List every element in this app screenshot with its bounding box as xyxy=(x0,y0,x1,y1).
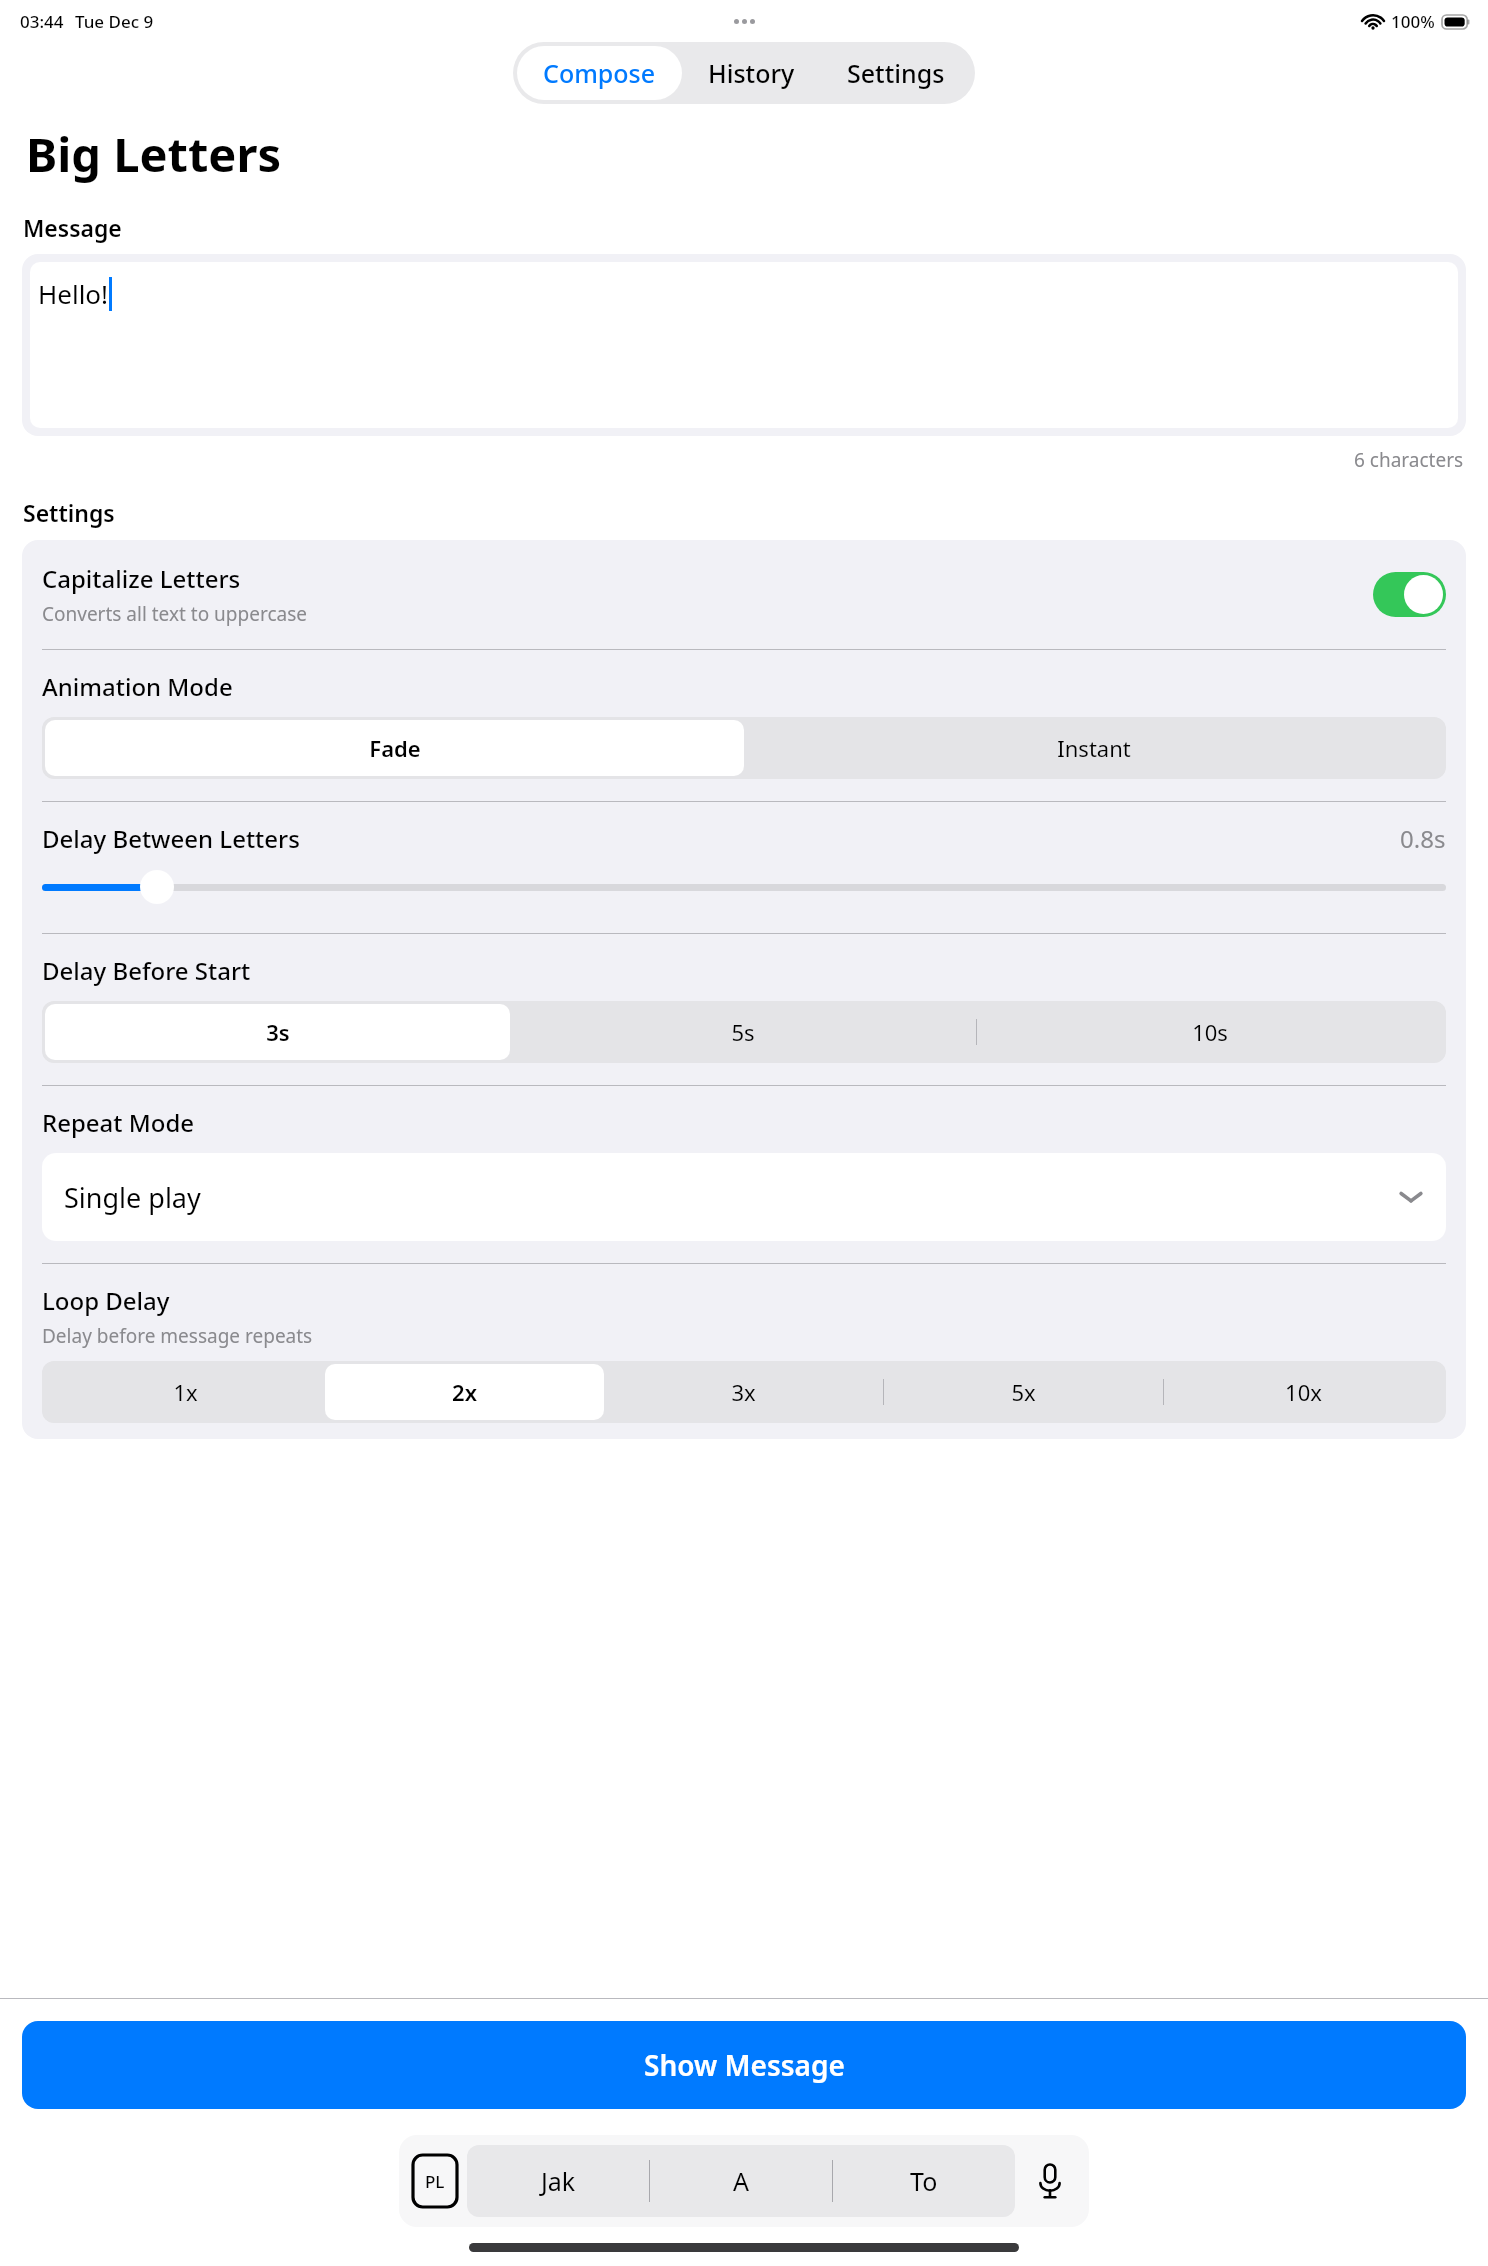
staticText: Delay Before Start xyxy=(42,954,251,987)
staticText: Repeat Mode xyxy=(42,1106,195,1139)
staticText: 100% xyxy=(1391,10,1435,33)
staticText: PL xyxy=(425,2170,445,2193)
button[interactable]: Dictation xyxy=(1025,2156,1075,2206)
button[interactable]: 10x xyxy=(1164,1364,1443,1420)
staticText: Hello! xyxy=(38,276,109,311)
staticText: Tue Dec 9 xyxy=(75,10,154,33)
staticText: Big Letters xyxy=(26,122,282,186)
staticText: Instant xyxy=(1057,733,1131,763)
staticText: A xyxy=(733,2164,749,2198)
staticText: Delay before message repeats xyxy=(42,1323,313,1349)
button[interactable]: 3x xyxy=(604,1364,883,1420)
staticText: Capitalize Letters xyxy=(42,562,241,595)
staticText: 6 characters xyxy=(1354,447,1464,473)
button[interactable]: 1x xyxy=(45,1364,325,1420)
staticText: Delay Between Letters xyxy=(42,822,300,855)
staticText: 10x xyxy=(1285,1377,1322,1407)
button[interactable]: Single play xyxy=(42,1153,1446,1241)
button[interactable]: 5x xyxy=(884,1364,1163,1420)
button[interactable]: 5s xyxy=(510,1004,976,1060)
staticText: 1x xyxy=(173,1377,198,1407)
button[interactable]: Settings xyxy=(821,46,971,100)
staticText: Settings xyxy=(847,56,945,90)
button[interactable]: Fade xyxy=(45,720,744,776)
button[interactable]: Instant xyxy=(744,720,1443,776)
staticText: 5x xyxy=(1011,1377,1036,1407)
button[interactable]: Language PL xyxy=(413,2155,457,2207)
staticText: 0.8s xyxy=(1400,822,1446,855)
staticText: Converts all text to uppercase xyxy=(42,601,307,627)
button[interactable]: A xyxy=(650,2145,832,2217)
staticText: Message xyxy=(23,212,122,243)
staticText: 10s xyxy=(1192,1017,1228,1047)
button[interactable]: Capitalize Letters xyxy=(42,540,1446,649)
button[interactable]: 10s xyxy=(977,1004,1443,1060)
button[interactable]: Compose xyxy=(517,46,682,100)
staticText: To xyxy=(910,2164,938,2198)
button[interactable]: 2x xyxy=(325,1364,604,1420)
staticText: Compose xyxy=(543,56,656,90)
button[interactable]: 3s xyxy=(45,1004,510,1060)
staticText: History xyxy=(708,56,795,90)
staticText: Jak xyxy=(541,2164,576,2198)
button[interactable]: Hello! xyxy=(30,262,1458,428)
staticText: Animation Mode xyxy=(42,670,233,703)
staticText: Fade xyxy=(369,733,421,763)
staticText: Loop Delay xyxy=(42,1284,170,1317)
button[interactable]: To xyxy=(833,2145,1015,2217)
staticText: 03:44 xyxy=(20,10,64,33)
staticText: 3s xyxy=(266,1017,290,1047)
button[interactable]: Capitalize Letters toggle xyxy=(1373,572,1446,617)
staticText: 3x xyxy=(731,1377,756,1407)
staticText: Show Message xyxy=(644,2046,845,2084)
button[interactable]: Jak xyxy=(467,2145,649,2217)
staticText: 2x xyxy=(452,1377,477,1407)
button[interactable]: History xyxy=(682,46,821,100)
staticText: 5s xyxy=(731,1017,755,1047)
button[interactable]: Show Message xyxy=(22,2021,1466,2109)
staticText: Single play xyxy=(64,1179,201,1216)
button[interactable]: Delay slider xyxy=(140,870,174,904)
staticText: Settings xyxy=(23,497,115,528)
